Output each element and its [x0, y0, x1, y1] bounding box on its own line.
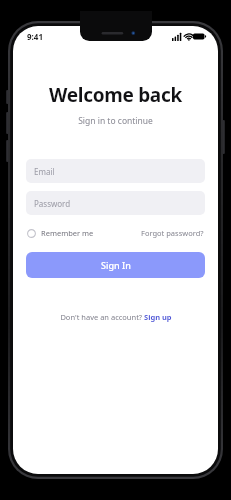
staticText: Forgot password?: [141, 228, 204, 238]
button[interactable]: Email: [26, 159, 205, 183]
button[interactable]: Password: [26, 191, 205, 215]
staticText: Sign In: [101, 259, 131, 271]
button[interactable]: Sign In: [26, 252, 205, 278]
button[interactable]: Forgot password?: [140, 226, 205, 240]
staticText: Remember me: [41, 228, 94, 238]
button[interactable]: Remember me: [26, 226, 95, 240]
staticText: Password: [34, 198, 71, 209]
button[interactable]: Don't have an account? Sign up: [26, 312, 205, 322]
staticText: 9:41: [27, 31, 43, 42]
staticText: Welcome back: [13, 82, 218, 108]
staticText: Sign in to continue: [13, 115, 218, 127]
staticText: Email: [34, 166, 55, 177]
staticText: Don't have an account? Sign up: [60, 312, 172, 322]
